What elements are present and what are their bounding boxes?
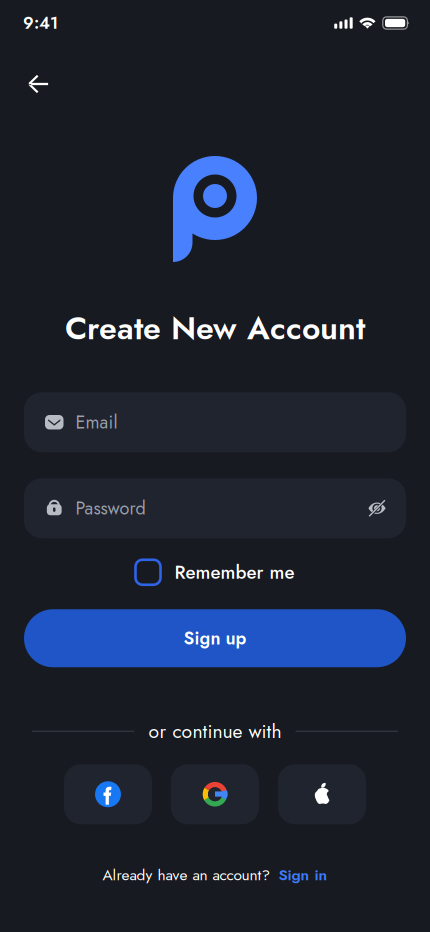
button[interactable]: Sign up <box>24 609 406 667</box>
staticText: Password <box>75 495 145 521</box>
staticText: Remember me <box>174 559 294 586</box>
staticText: Create New Account <box>65 305 365 351</box>
button[interactable]: Already have an account? <box>102 864 327 886</box>
staticText: Sign in <box>278 864 327 886</box>
staticText: Sign up <box>183 625 246 651</box>
button[interactable]: Remember me <box>135 559 294 585</box>
button[interactable]: Continue with Facebook <box>64 764 152 824</box>
staticText: Email <box>75 409 117 435</box>
staticText: 9:41 <box>23 11 58 35</box>
button[interactable]: Email <box>24 392 406 452</box>
button[interactable]: Continue with Apple <box>278 764 366 824</box>
button[interactable]: Continue with Google <box>171 764 259 824</box>
button[interactable]: Back <box>17 63 59 105</box>
staticText: or continue with <box>148 717 281 745</box>
button[interactable]: Password <box>24 478 406 538</box>
staticText: Already have an account? <box>102 864 270 886</box>
